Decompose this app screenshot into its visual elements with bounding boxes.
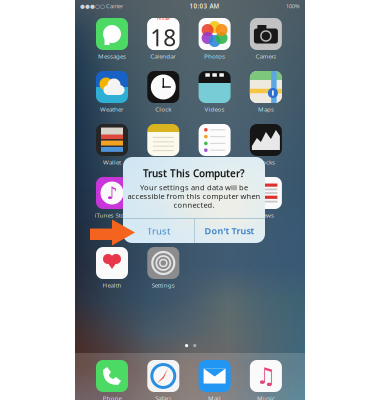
button[interactable]: Videos <box>191 71 239 113</box>
staticText: Safari <box>155 394 171 400</box>
button[interactable]: Camera <box>242 18 290 60</box>
button[interactable]: News <box>242 177 290 219</box>
button[interactable]: Wallet <box>88 124 136 166</box>
staticText: Photos <box>204 52 225 60</box>
staticText: Phone <box>102 394 121 400</box>
staticText: Calendar <box>150 52 176 60</box>
button[interactable]: Don't Trust <box>194 219 265 243</box>
staticText: FRIDAY <box>157 16 170 21</box>
button[interactable]: FRIDAY <box>139 18 187 60</box>
staticText: iBooks <box>205 211 225 219</box>
button[interactable]: ♫ <box>242 360 290 400</box>
staticText: Videos <box>205 105 225 113</box>
staticText: Maps <box>258 105 274 113</box>
button[interactable]: Messages <box>88 18 136 60</box>
button[interactable]: Clock <box>139 71 187 113</box>
button[interactable]: Reminders <box>191 124 239 166</box>
staticText: Settings <box>152 281 175 289</box>
staticText: Wallet <box>103 158 121 166</box>
button[interactable]: iBooks <box>191 177 239 219</box>
staticText: 10:03 AM <box>189 2 219 10</box>
staticText: Health <box>102 281 121 289</box>
button[interactable]: ♪ <box>88 177 136 219</box>
staticText: News <box>258 211 274 219</box>
staticText: Trust This Computer? <box>143 167 245 180</box>
button[interactable]: Health <box>88 247 136 289</box>
button[interactable]: Settings <box>139 247 187 289</box>
button[interactable]: Photos <box>191 18 239 60</box>
staticText: Mail <box>208 394 221 400</box>
staticText: ♪ <box>106 183 117 203</box>
staticText: 100% <box>286 2 300 10</box>
staticText: ♫ <box>256 363 276 389</box>
staticText: Don't Trust <box>204 225 254 237</box>
staticText: connected. <box>173 200 214 210</box>
staticText: Trust <box>147 224 170 237</box>
button[interactable]: Phone <box>88 360 136 400</box>
staticText: Stocks <box>257 158 275 166</box>
staticText: Music <box>257 394 275 400</box>
staticText: Camera <box>255 52 276 60</box>
staticText: 18 <box>150 22 176 53</box>
button[interactable]: Mail <box>191 360 239 400</box>
staticText: accessible from this computer when <box>127 191 260 201</box>
staticText: App Store <box>149 211 177 219</box>
button[interactable]: Weather <box>88 71 136 113</box>
button[interactable]: Notes <box>139 124 187 166</box>
staticText: ●●●○○ Carrier <box>80 2 123 10</box>
button[interactable]: Stocks <box>242 124 290 166</box>
staticText: Weather <box>100 105 124 113</box>
staticText: Clock <box>155 105 171 113</box>
button[interactable]: Maps <box>242 71 290 113</box>
staticText: iTunes Store <box>94 211 129 219</box>
button[interactable]: App Store <box>139 177 187 219</box>
button[interactable]: Trust <box>123 219 194 243</box>
staticText: Messages <box>98 52 126 60</box>
button[interactable]: Safari <box>139 360 187 400</box>
staticText: Your settings and data will be <box>140 182 248 192</box>
